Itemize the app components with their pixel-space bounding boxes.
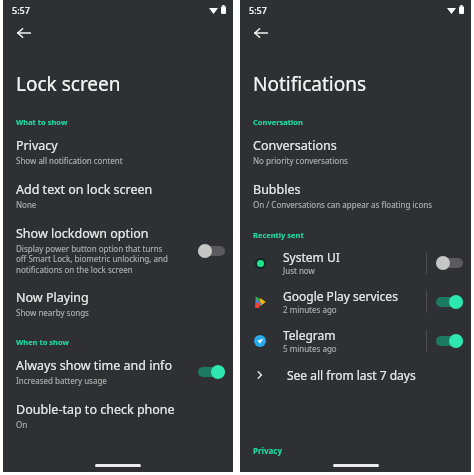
button[interactable]: Privacy — [253, 445, 282, 456]
staticText: Notifications — [253, 71, 367, 97]
staticText: 5 minutes ago — [283, 343, 337, 354]
staticText: 5:57 — [249, 4, 267, 16]
staticText: Add text on lock screen — [16, 181, 153, 198]
staticText: 2 minutes ago — [283, 304, 337, 315]
button[interactable]: Always show time and info — [3, 354, 233, 389]
staticText: Show nearby songs — [16, 307, 89, 318]
staticText: On / Conversations can appear as floatin… — [253, 199, 433, 210]
button[interactable]: Switch off — [436, 256, 463, 270]
button[interactable]: Add text on lock screen — [3, 178, 233, 213]
button[interactable]: Switch off — [198, 244, 225, 258]
staticText: Always show time and info — [16, 357, 172, 374]
staticText: Privacy — [16, 137, 58, 154]
staticText: Double-tap to check phone — [16, 401, 175, 418]
staticText: Conversation — [253, 117, 303, 127]
staticText: When to show — [16, 337, 69, 347]
staticText: Conversations — [253, 137, 337, 154]
staticText: Bubbles — [253, 181, 301, 198]
button[interactable]: Switch on — [198, 365, 225, 379]
button[interactable]: Privacy — [3, 134, 233, 169]
staticText: Recently sent — [253, 230, 304, 240]
staticText: Lock screen — [16, 71, 121, 97]
button[interactable]: Telegram — [240, 324, 471, 357]
button[interactable]: Bubbles — [240, 178, 471, 213]
staticText: What to show — [16, 117, 68, 127]
button[interactable]: Now Playing — [3, 286, 233, 321]
staticText: Google Play services — [283, 288, 398, 304]
button[interactable]: Switch on — [436, 295, 463, 309]
staticText: Show lockdown option — [16, 225, 149, 242]
staticText: Just now — [283, 265, 315, 276]
button[interactable]: System UI — [240, 246, 471, 279]
staticText: None — [16, 199, 37, 210]
staticText: 5:57 — [12, 4, 30, 16]
staticText: On — [16, 419, 28, 430]
button[interactable]: Back — [10, 19, 38, 47]
staticText: No priority conversations — [253, 155, 348, 166]
button[interactable]: Back — [247, 19, 275, 47]
staticText: Display power button option that turns o… — [16, 243, 168, 276]
staticText: System UI — [283, 249, 340, 265]
staticText: Increased battery usage — [16, 375, 107, 386]
staticText: Show all notification content — [16, 155, 123, 166]
staticText: See all from last 7 days — [287, 367, 416, 383]
staticText: Telegram — [283, 327, 336, 343]
button[interactable]: Double-tap to check phone — [3, 398, 233, 433]
button[interactable]: Conversations — [240, 134, 471, 169]
button[interactable]: See all from last 7 days — [240, 363, 471, 387]
button[interactable]: Show lockdown option — [3, 222, 233, 279]
staticText: Now Playing — [16, 289, 89, 306]
button[interactable]: Switch on — [436, 334, 463, 348]
button[interactable]: Google Play services — [240, 285, 471, 318]
